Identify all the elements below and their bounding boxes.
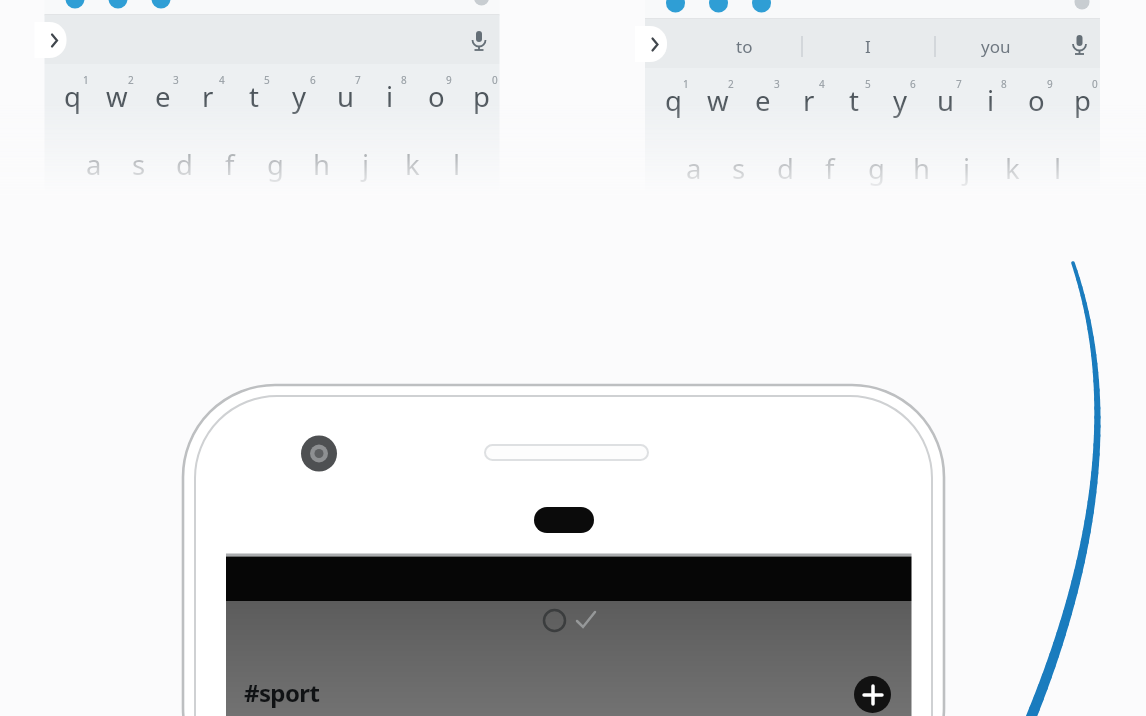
staticText: r [803, 82, 815, 119]
staticText: p [473, 78, 490, 115]
staticText: h [313, 146, 330, 183]
staticText: u [937, 82, 954, 119]
button[interactable]: i [366, 76, 414, 116]
staticText: i [386, 78, 394, 115]
button[interactable]: 6 [289, 60, 337, 100]
staticText: 4 [819, 77, 825, 91]
staticText: 9 [1047, 77, 1053, 91]
button[interactable]: j [943, 148, 991, 188]
staticText: a [686, 150, 702, 187]
button[interactable]: 8 [980, 64, 1028, 104]
button[interactable]: 4 [798, 64, 846, 104]
button[interactable]: 3 [753, 64, 801, 104]
button[interactable]: y [275, 76, 323, 116]
staticText: r [202, 78, 214, 115]
staticText: 5 [865, 77, 871, 91]
button[interactable]: 7 [935, 64, 983, 104]
button[interactable]: o [1012, 80, 1060, 120]
button[interactable]: u [921, 80, 969, 120]
button[interactable]: s [715, 148, 763, 188]
button[interactable]: you [972, 26, 1020, 66]
staticText: h [913, 150, 930, 187]
button[interactable]: 2 [107, 60, 155, 100]
button[interactable]: d [160, 144, 208, 184]
staticText: f [825, 150, 835, 187]
staticText: 3 [173, 73, 179, 87]
button[interactable]: s [115, 144, 163, 184]
button[interactable]: to [720, 26, 768, 66]
staticText: #sport [244, 676, 320, 709]
button[interactable]: o [412, 76, 460, 116]
staticText: 2 [728, 77, 734, 91]
staticText: 5 [264, 73, 270, 87]
button[interactable]: I [844, 26, 892, 66]
button[interactable]: i [967, 80, 1015, 120]
button[interactable]: 7 [334, 60, 382, 100]
button[interactable]: d [761, 148, 809, 188]
button[interactable]: 5 [844, 64, 892, 104]
staticText: f [225, 146, 235, 183]
button[interactable]: g [251, 144, 299, 184]
button[interactable]: 0 [471, 60, 519, 100]
staticText: 9 [446, 73, 452, 87]
button[interactable]: a [670, 148, 718, 188]
button[interactable]: w [93, 76, 141, 116]
button[interactable]: 8 [380, 60, 428, 100]
staticText: 1 [83, 73, 89, 87]
staticText: p [1074, 82, 1091, 119]
staticText: e [155, 78, 171, 115]
button[interactable]: q [48, 76, 96, 116]
button[interactable]: r [184, 76, 232, 116]
staticText: t [249, 78, 259, 115]
button[interactable]: k [388, 144, 436, 184]
button[interactable]: 4 [198, 60, 246, 100]
staticText: 8 [401, 73, 407, 87]
staticText: k [1005, 150, 1020, 187]
button[interactable]: f [806, 148, 854, 188]
button[interactable]: y [876, 80, 924, 120]
button[interactable]: 2 [707, 64, 755, 104]
button[interactable]: 5 [243, 60, 291, 100]
button[interactable]: h [297, 144, 345, 184]
button[interactable]: l [1034, 148, 1082, 188]
button[interactable]: t [830, 80, 878, 120]
staticText: s [732, 150, 746, 187]
button[interactable]: #sport [244, 676, 320, 709]
button[interactable]: 9 [1026, 64, 1074, 104]
button[interactable]: w [694, 80, 742, 120]
button[interactable]: a [70, 144, 118, 184]
staticText: o [1028, 82, 1045, 119]
button[interactable]: 6 [889, 64, 937, 104]
button[interactable]: e [139, 76, 187, 116]
button[interactable]: k [988, 148, 1036, 188]
button[interactable]: 1 [662, 64, 710, 104]
button[interactable]: 9 [425, 60, 473, 100]
staticText: j [362, 146, 370, 183]
button[interactable] [854, 676, 891, 713]
button[interactable]: p [1058, 80, 1106, 120]
button[interactable]: f [206, 144, 254, 184]
button[interactable]: p [457, 76, 505, 116]
button[interactable]: j [342, 144, 390, 184]
staticText: 0 [492, 73, 498, 87]
staticText: 0 [1092, 77, 1098, 91]
button[interactable]: h [897, 148, 945, 188]
button[interactable]: r [785, 80, 833, 120]
button[interactable]: g [852, 148, 900, 188]
staticText: w [707, 82, 729, 119]
staticText: d [176, 146, 193, 183]
button[interactable]: q [649, 80, 697, 120]
staticText: s [132, 146, 146, 183]
button[interactable]: u [321, 76, 369, 116]
staticText: y [292, 78, 307, 115]
button[interactable]: e [739, 80, 787, 120]
button[interactable]: t [230, 76, 278, 116]
button[interactable]: l [433, 144, 481, 184]
staticText: 7 [956, 77, 962, 91]
staticText: g [868, 150, 885, 187]
button[interactable]: 3 [152, 60, 200, 100]
staticText: 1 [683, 77, 689, 91]
staticText: to [736, 35, 753, 58]
button[interactable]: 0 [1071, 64, 1119, 104]
button[interactable]: 1 [62, 60, 110, 100]
